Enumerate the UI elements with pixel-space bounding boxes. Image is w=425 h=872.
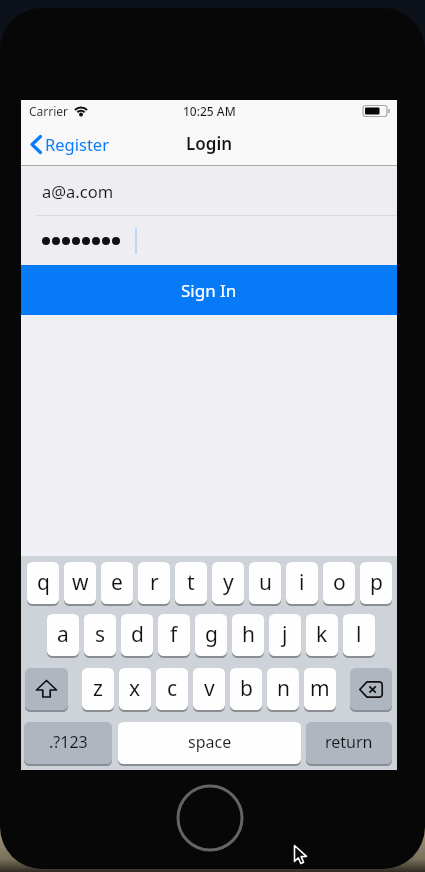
- button[interactable]: a@a.com: [21, 166, 397, 215]
- button[interactable]: c: [156, 668, 188, 710]
- button[interactable]: h: [232, 614, 264, 656]
- button[interactable]: g: [195, 614, 227, 656]
- staticText: f: [170, 620, 178, 649]
- staticText: p: [370, 568, 383, 597]
- staticText: Carrier: [29, 103, 69, 119]
- button[interactable]: j: [269, 614, 301, 656]
- button[interactable]: y: [212, 562, 244, 604]
- staticText: u: [259, 568, 272, 597]
- staticText: a@a.com: [42, 180, 114, 202]
- staticText: i: [299, 568, 305, 597]
- button[interactable]: r: [138, 562, 170, 604]
- staticText: t: [187, 568, 195, 597]
- button[interactable]: [21, 216, 397, 265]
- staticText: o: [333, 568, 346, 597]
- button[interactable]: l: [343, 614, 375, 656]
- staticText: Login: [186, 132, 233, 155]
- staticText: d: [131, 620, 144, 649]
- button[interactable]: d: [121, 614, 153, 656]
- staticText: Sign In: [181, 279, 237, 302]
- staticText: r: [150, 568, 159, 597]
- button[interactable]: t: [175, 562, 207, 604]
- staticText: space: [188, 731, 232, 753]
- staticText: c: [167, 674, 178, 703]
- staticText: g: [205, 620, 218, 649]
- button[interactable]: .?123: [24, 722, 112, 764]
- button[interactable]: z: [82, 668, 114, 710]
- button[interactable]: a: [47, 614, 79, 656]
- button[interactable]: [350, 668, 392, 710]
- button[interactable]: w: [64, 562, 96, 604]
- button[interactable]: Register: [30, 133, 109, 155]
- staticText: return: [325, 731, 373, 753]
- button[interactable]: b: [230, 668, 262, 710]
- button[interactable]: v: [193, 668, 225, 710]
- button[interactable]: o: [323, 562, 355, 604]
- button[interactable]: return: [306, 722, 392, 764]
- staticText: v: [204, 674, 215, 703]
- staticText: x: [129, 674, 141, 703]
- staticText: .?123: [49, 731, 88, 753]
- button[interactable]: s: [84, 614, 116, 656]
- button[interactable]: Sign In: [21, 265, 397, 315]
- staticText: n: [277, 674, 290, 703]
- button[interactable]: f: [158, 614, 190, 656]
- staticText: l: [356, 620, 362, 649]
- staticText: a: [57, 620, 69, 649]
- staticText: w: [72, 568, 89, 597]
- button[interactable]: i: [286, 562, 318, 604]
- staticText: b: [240, 674, 253, 703]
- staticText: h: [242, 620, 255, 649]
- button[interactable]: x: [119, 668, 151, 710]
- button[interactable]: u: [249, 562, 281, 604]
- button[interactable]: n: [267, 668, 299, 710]
- staticText: y: [223, 568, 234, 597]
- button[interactable]: k: [306, 614, 338, 656]
- staticText: j: [282, 620, 288, 649]
- staticText: q: [37, 568, 50, 597]
- button[interactable]: space: [118, 722, 301, 764]
- staticText: z: [93, 674, 103, 703]
- button[interactable]: [25, 668, 68, 710]
- button[interactable]: p: [360, 562, 392, 604]
- button[interactable]: m: [304, 668, 336, 710]
- button[interactable]: e: [101, 562, 133, 604]
- staticText: 10:25 AM: [183, 103, 236, 119]
- staticText: k: [316, 620, 328, 649]
- staticText: Register: [45, 133, 109, 155]
- staticText: e: [111, 568, 123, 597]
- staticText: m: [310, 674, 330, 703]
- button[interactable]: q: [27, 562, 59, 604]
- staticText: s: [95, 620, 106, 649]
